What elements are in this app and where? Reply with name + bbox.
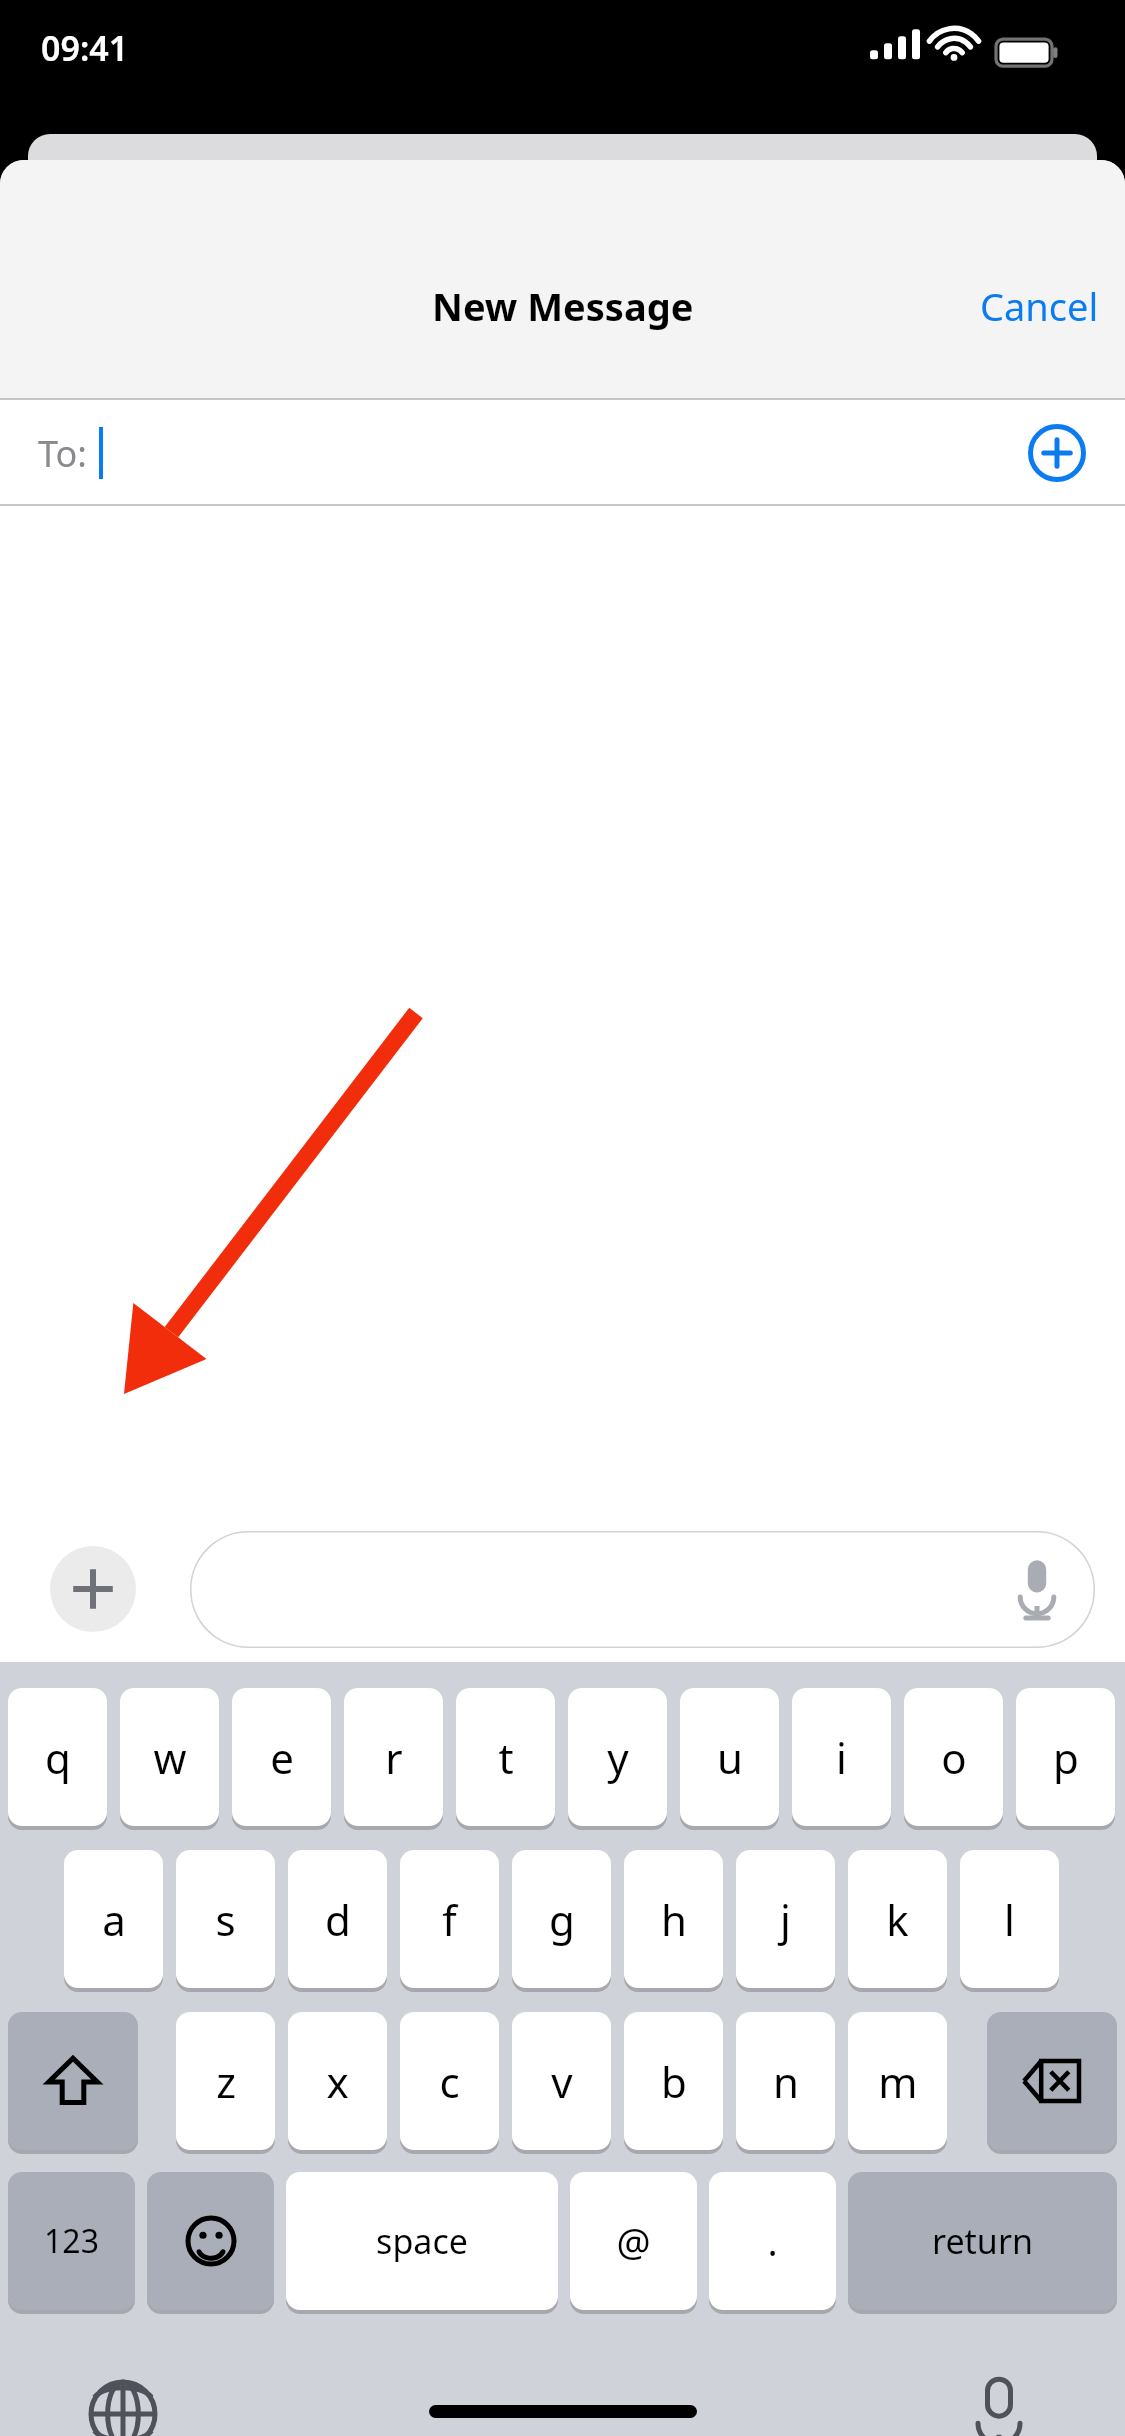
button[interactable]: f bbox=[400, 1850, 499, 1988]
staticText: 123 bbox=[44, 2219, 99, 2263]
staticText: To: bbox=[38, 429, 87, 478]
button[interactable]: d bbox=[288, 1850, 387, 1988]
button[interactable]: r bbox=[344, 1688, 443, 1826]
staticText: New Message bbox=[432, 280, 694, 332]
staticText: @ bbox=[616, 2215, 651, 2267]
staticText: 09:41 bbox=[41, 25, 129, 71]
button[interactable]: u bbox=[680, 1688, 779, 1826]
staticText: z bbox=[216, 2053, 236, 2110]
staticText: d bbox=[325, 1891, 351, 1948]
button[interactable]: k bbox=[848, 1850, 947, 1988]
staticText: g bbox=[549, 1891, 575, 1948]
button[interactable]: g bbox=[512, 1850, 611, 1988]
button[interactable]: To: bbox=[0, 400, 1125, 506]
button[interactable]: . bbox=[709, 2172, 836, 2310]
staticText: n bbox=[773, 2053, 799, 2110]
button[interactable]: t bbox=[456, 1688, 555, 1826]
button[interactable]: Cancel bbox=[954, 266, 1125, 346]
button[interactable] bbox=[147, 2172, 274, 2310]
button[interactable]: w bbox=[120, 1688, 219, 1826]
button[interactable]: space bbox=[286, 2172, 558, 2310]
staticText: y bbox=[607, 1729, 629, 1786]
button[interactable]: e bbox=[232, 1688, 331, 1826]
button[interactable]: Switch keyboard bbox=[86, 2377, 160, 2436]
button[interactable]: l bbox=[960, 1850, 1059, 1988]
staticText: l bbox=[1004, 1891, 1015, 1948]
staticText: v bbox=[551, 2053, 573, 2110]
staticText: f bbox=[442, 1891, 457, 1948]
button[interactable]: return bbox=[848, 2172, 1117, 2310]
button[interactable]: a bbox=[64, 1850, 163, 1988]
staticText: b bbox=[661, 2053, 687, 2110]
button[interactable]: x bbox=[288, 2012, 387, 2150]
button[interactable]: q bbox=[8, 1688, 107, 1826]
button[interactable]: s bbox=[176, 1850, 275, 1988]
button[interactable] bbox=[987, 2012, 1117, 2150]
button[interactable]: o bbox=[904, 1688, 1003, 1826]
staticText: i bbox=[836, 1729, 847, 1786]
button[interactable]: p bbox=[1016, 1688, 1115, 1826]
staticText: space bbox=[376, 2218, 468, 2264]
staticText: a bbox=[102, 1891, 126, 1948]
button[interactable]: m bbox=[848, 2012, 947, 2150]
button[interactable]: h bbox=[624, 1850, 723, 1988]
button[interactable]: i bbox=[792, 1688, 891, 1826]
staticText: p bbox=[1053, 1729, 1079, 1786]
staticText: j bbox=[780, 1891, 791, 1948]
button[interactable]: y bbox=[568, 1688, 667, 1826]
button[interactable]: j bbox=[736, 1850, 835, 1988]
staticText: return bbox=[932, 2218, 1033, 2264]
staticText: e bbox=[270, 1729, 294, 1786]
button[interactable]: b bbox=[624, 2012, 723, 2150]
staticText: w bbox=[153, 1729, 187, 1786]
staticText: t bbox=[498, 1729, 514, 1786]
staticText: c bbox=[439, 2053, 460, 2110]
button[interactable]: Dictation bbox=[962, 2377, 1036, 2436]
button[interactable] bbox=[8, 2012, 138, 2150]
button[interactable]: c bbox=[400, 2012, 499, 2150]
button[interactable]: 123 bbox=[8, 2172, 135, 2310]
staticText: Cancel bbox=[980, 280, 1099, 332]
staticText: q bbox=[45, 1729, 71, 1786]
button[interactable]: Add attachment bbox=[50, 1546, 136, 1632]
staticText: u bbox=[717, 1729, 743, 1786]
button[interactable]: @ bbox=[570, 2172, 697, 2310]
staticText: o bbox=[941, 1729, 967, 1786]
staticText: x bbox=[326, 2053, 349, 2110]
staticText: r bbox=[385, 1729, 403, 1786]
staticText: h bbox=[661, 1891, 687, 1948]
button[interactable]: z bbox=[176, 2012, 275, 2150]
staticText: s bbox=[215, 1891, 236, 1948]
staticText: m bbox=[878, 2053, 918, 2110]
button[interactable] bbox=[190, 1531, 1095, 1648]
staticText: . bbox=[767, 2215, 778, 2267]
staticText: k bbox=[886, 1891, 909, 1948]
button[interactable]: v bbox=[512, 2012, 611, 2150]
button[interactable]: n bbox=[736, 2012, 835, 2150]
button[interactable]: Add contact bbox=[1017, 413, 1097, 493]
